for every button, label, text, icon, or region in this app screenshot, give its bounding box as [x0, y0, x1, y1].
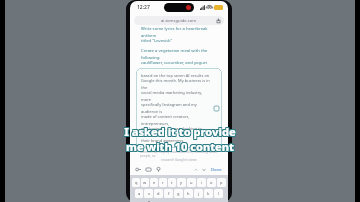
- button[interactable]: g: [174, 189, 183, 198]
- staticText: made of content creators, entrepreneurs,: [141, 114, 212, 126]
- staticText: research Google's views: [140, 158, 218, 162]
- staticText: Google this month. My business is in the: [141, 78, 212, 90]
- staticText: I asked it to provide: [123, 124, 235, 139]
- button[interactable]: a: [135, 189, 143, 198]
- staticText: q: [135, 180, 138, 185]
- staticText: 12:27: [137, 4, 150, 11]
- button[interactable]: ai.tomsguide.com: [134, 16, 224, 25]
- staticText: k: [207, 191, 210, 196]
- staticText: g: [177, 191, 180, 196]
- button[interactable]: l: [214, 189, 223, 198]
- button[interactable]: Camera: [145, 166, 152, 173]
- staticText: I asked it to provide: [125, 124, 237, 139]
- button[interactable]: Write some lyrics for a heartbreak anthe…: [141, 26, 222, 38]
- staticText: specifically Instagram and my audience i…: [141, 102, 212, 114]
- staticText: me with 10 content: [125, 140, 233, 155]
- button[interactable]: p: [217, 178, 226, 187]
- button[interactable]: Password: [135, 166, 142, 173]
- staticText: I asked it to provide: [123, 123, 235, 138]
- button[interactable]: h: [184, 189, 193, 198]
- staticText: I asked it to provide: [125, 123, 237, 138]
- staticText: me with 10 content: [125, 138, 233, 153]
- staticText: me with 10 content: [127, 140, 235, 155]
- staticText: titled "Lovesick": [141, 38, 173, 44]
- staticText: d: [157, 191, 160, 196]
- staticText: me with 10 content: [126, 140, 234, 155]
- staticText: a: [138, 191, 141, 196]
- button[interactable]: k: [204, 189, 213, 198]
- button[interactable]: y: [177, 178, 186, 187]
- staticText: p: [220, 180, 223, 185]
- staticText: I asked it to provide: [124, 123, 236, 138]
- button[interactable]: Location: [155, 166, 162, 173]
- button[interactable]: f: [164, 189, 173, 198]
- staticText: i: [201, 180, 203, 185]
- button[interactable]: Create a vegetarian meal with the follow…: [141, 48, 222, 60]
- button[interactable]: t: [168, 178, 176, 187]
- staticText: me with 10 content: [125, 139, 233, 154]
- staticText: I asked it to provide: [125, 125, 237, 140]
- button[interactable]: Done: [210, 167, 223, 173]
- staticText: cauliflower, cucumber, and yogurt: [141, 60, 207, 66]
- staticText: o: [210, 180, 213, 185]
- staticText: me with 10 content: [127, 138, 235, 153]
- staticText: me with 10 content: [127, 139, 235, 154]
- button[interactable]: o: [207, 178, 216, 187]
- staticText: me with 10 content: [126, 138, 234, 153]
- staticText: their brand awareness.: [141, 138, 185, 143]
- staticText: I asked it to provide: [123, 125, 235, 140]
- staticText: h: [187, 191, 190, 196]
- staticText: u: [190, 180, 193, 185]
- button[interactable]: d: [154, 189, 163, 198]
- other: Send: [214, 106, 219, 111]
- staticText: y: [180, 180, 183, 185]
- staticText: j: [198, 191, 200, 196]
- staticText: r: [162, 180, 164, 185]
- staticText: I asked it to provide: [124, 125, 236, 140]
- staticText: I asked it to provide: [124, 124, 236, 139]
- button[interactable]: Next: [201, 167, 207, 173]
- button[interactable]: w: [141, 178, 149, 187]
- staticText: l: [218, 191, 220, 196]
- staticText: ai.tomsguide.com: [161, 18, 197, 24]
- staticText: s: [148, 191, 150, 196]
- staticText: based on the top seven AI results on: [141, 73, 210, 78]
- button[interactable]: Previous: [193, 167, 199, 173]
- staticText: Done: [211, 167, 222, 173]
- staticText: Gemini may display inaccurate info, incl…: [140, 150, 218, 158]
- staticText: me with 10 content: [126, 139, 234, 154]
- staticText: social media marketing industry, more: [141, 90, 212, 102]
- staticText: f: [168, 191, 170, 196]
- button[interactable]: titled "Lovesick": [141, 38, 222, 44]
- staticText: e: [153, 180, 156, 185]
- staticText: w: [143, 180, 147, 185]
- button[interactable]: i: [197, 178, 206, 187]
- staticText: t: [171, 180, 173, 185]
- button[interactable]: q: [132, 178, 140, 187]
- staticText: and business openers looking to increase: [141, 126, 212, 138]
- button[interactable]: u: [187, 178, 196, 187]
- button[interactable]: r: [159, 178, 167, 187]
- staticText: Create a vegetarian meal with the follow…: [141, 48, 222, 60]
- button[interactable]: j: [194, 189, 203, 198]
- button[interactable]: s: [144, 189, 153, 198]
- other: Share: [216, 18, 221, 23]
- staticText: Write some lyrics for a heartbreak anthe…: [141, 26, 222, 38]
- button[interactable]: e: [150, 178, 158, 187]
- button[interactable]: based on the top seven AI results on: [136, 68, 222, 148]
- button[interactable]: cauliflower, cucumber, and yogurt: [141, 60, 222, 66]
